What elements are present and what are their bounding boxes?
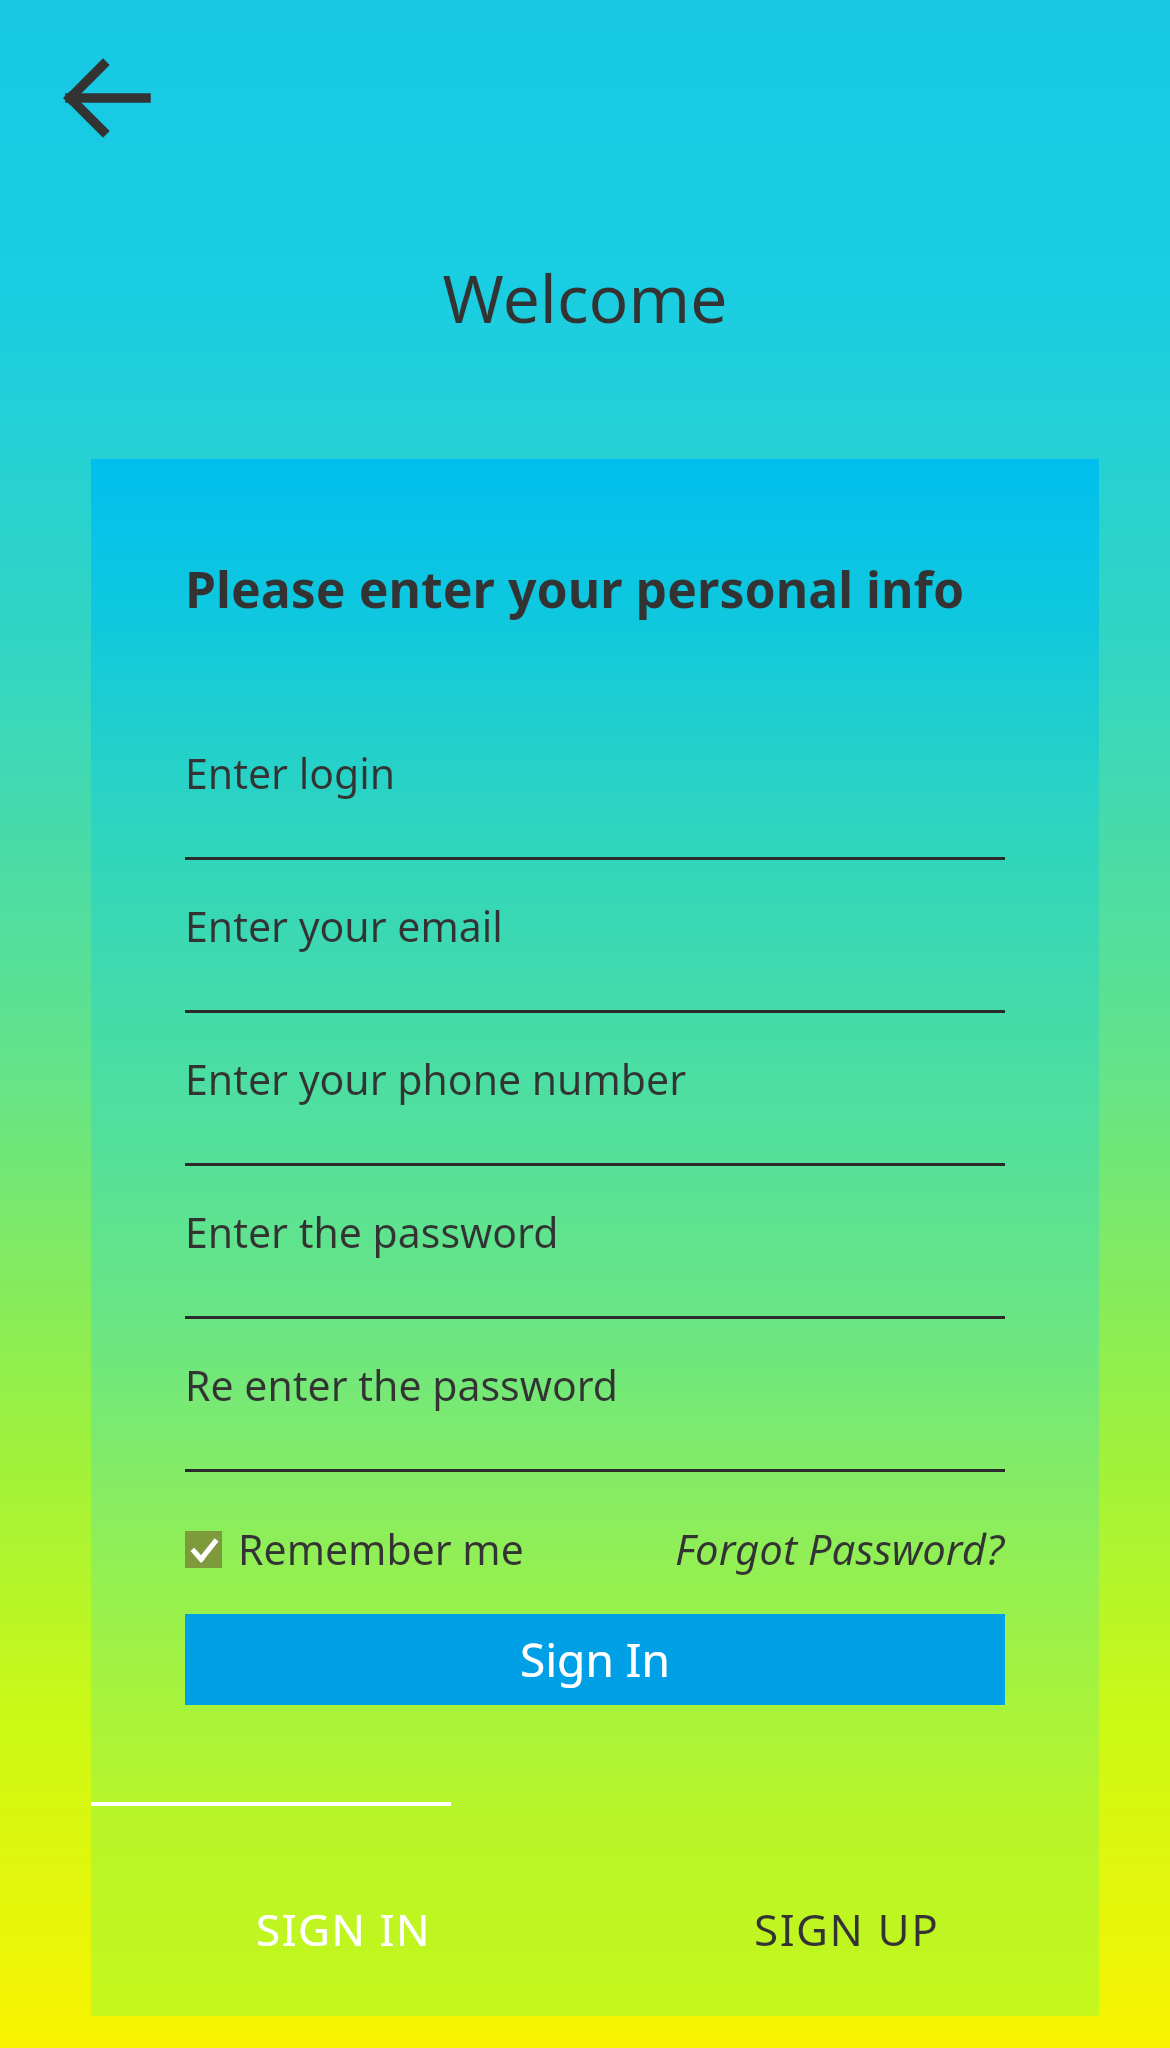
button[interactable]: Enter login bbox=[185, 707, 1005, 860]
staticText: Enter your phone number bbox=[185, 1051, 687, 1107]
staticText: SIGN UP bbox=[754, 1899, 940, 1959]
button[interactable]: Back bbox=[56, 46, 160, 150]
staticText: Sign In bbox=[520, 1628, 670, 1691]
button[interactable]: Forgot Password? bbox=[675, 1520, 1005, 1577]
button[interactable]: SIGN UP bbox=[595, 1869, 1099, 1989]
button[interactable]: Enter your phone number bbox=[185, 1013, 1005, 1166]
button[interactable]: Enter the password bbox=[185, 1166, 1005, 1319]
staticText: Enter login bbox=[185, 745, 396, 801]
staticText: Enter your email bbox=[185, 898, 503, 954]
staticText: Re enter the password bbox=[185, 1357, 619, 1413]
staticText: Enter the password bbox=[185, 1204, 559, 1260]
button[interactable]: Re enter the password bbox=[185, 1319, 1005, 1472]
button[interactable]: Remember me bbox=[185, 1521, 524, 1577]
staticText: Remember me bbox=[238, 1521, 524, 1577]
button[interactable]: Sign In bbox=[185, 1614, 1005, 1705]
staticText: SIGN IN bbox=[256, 1899, 431, 1959]
button[interactable]: SIGN IN bbox=[91, 1869, 595, 1989]
staticText: Welcome bbox=[0, 252, 1170, 342]
staticText: Please enter your personal info bbox=[185, 555, 965, 623]
button[interactable]: Enter your email bbox=[185, 860, 1005, 1013]
